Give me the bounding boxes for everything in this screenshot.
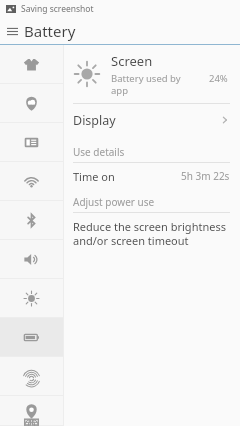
staticText: Use details [73, 145, 125, 159]
button[interactable]: Display [64, 104, 240, 136]
button[interactable]: Wi-Fi [0, 162, 63, 201]
button[interactable]: Screen [64, 45, 240, 103]
button[interactable]: Display [0, 279, 63, 318]
button[interactable]: Battery [0, 318, 63, 357]
button[interactable]: SIM card manager [0, 123, 63, 162]
staticText: Reduce the screen brightness and/or scre… [73, 219, 226, 248]
staticText: 24% [209, 72, 228, 85]
button[interactable]: Sounds and vibration [0, 240, 63, 279]
button[interactable]: Cloud and accounts [0, 84, 63, 123]
staticText: Saving screenshot [21, 3, 94, 15]
button[interactable]: Time on [64, 163, 240, 189]
button[interactable]: Themes [0, 45, 63, 84]
button[interactable]: Navigation menu [0, 18, 24, 44]
staticText: Adjust power use [73, 195, 155, 209]
staticText: Display [73, 112, 116, 129]
button[interactable]: Biometrics [0, 357, 63, 396]
button[interactable]: Location [0, 396, 63, 426]
staticText: Battery [24, 21, 76, 41]
staticText: Screen [111, 52, 153, 70]
staticText: Time on [73, 169, 115, 184]
staticText: Battery used by app [111, 72, 181, 96]
staticText: 5h 3m 22s [181, 169, 230, 183]
button[interactable]: Bluetooth [0, 201, 63, 240]
